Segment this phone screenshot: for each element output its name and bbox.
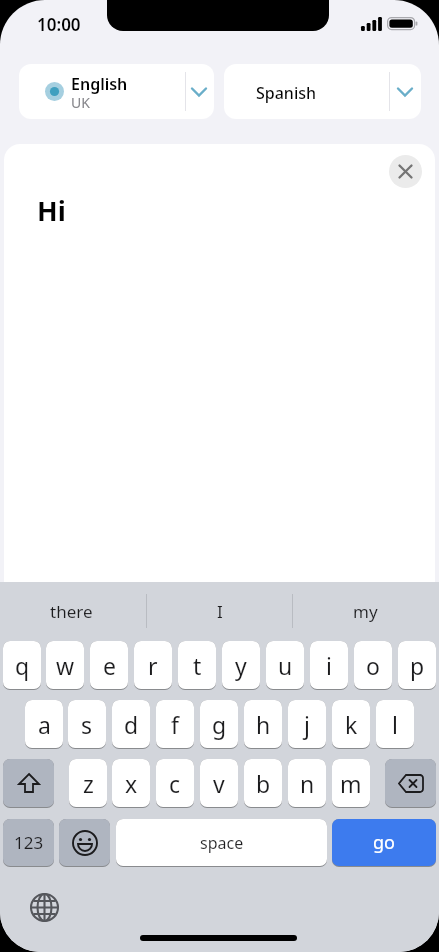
staticText: r — [148, 650, 158, 681]
button[interactable]: y — [222, 641, 260, 689]
button[interactable]: 123 — [3, 819, 54, 866]
staticText: UK — [71, 93, 90, 112]
staticText: m — [340, 768, 362, 799]
button[interactable]: h — [244, 700, 282, 748]
staticText: a — [38, 709, 51, 740]
button[interactable]: go — [332, 819, 436, 866]
button[interactable]: m — [332, 759, 370, 807]
staticText: d — [124, 709, 139, 740]
staticText: p — [410, 650, 425, 681]
button[interactable]: z — [69, 759, 107, 807]
button[interactable]: c — [156, 759, 194, 807]
staticText: k — [345, 709, 358, 740]
button[interactable]: d — [112, 700, 150, 748]
button[interactable]: g — [200, 700, 238, 748]
staticText: o — [366, 650, 380, 681]
button[interactable]: a — [25, 700, 63, 748]
staticText: 10:00 — [37, 13, 81, 36]
staticText: e — [103, 650, 116, 681]
button[interactable]: t — [178, 641, 216, 689]
staticText: q — [15, 650, 30, 681]
staticText: Hi — [37, 192, 66, 229]
button[interactable] — [385, 759, 436, 807]
button[interactable]: i — [310, 641, 348, 689]
staticText: v — [213, 768, 225, 799]
button[interactable]: w — [46, 641, 84, 689]
staticText: t — [193, 650, 202, 681]
staticText: j — [304, 709, 310, 740]
staticText: y — [235, 650, 247, 681]
staticText: go — [373, 830, 395, 855]
button[interactable]: s — [68, 700, 106, 748]
staticText: I — [217, 600, 223, 623]
button[interactable]: q — [3, 641, 41, 689]
button[interactable]: o — [354, 641, 392, 689]
staticText: c — [169, 768, 181, 799]
staticText: Spanish — [256, 82, 317, 104]
staticText: s — [81, 709, 93, 740]
button[interactable]: x — [112, 759, 150, 807]
button[interactable]: Spanish — [224, 64, 421, 119]
staticText: there — [50, 600, 93, 623]
button[interactable] — [389, 155, 422, 188]
button[interactable] — [59, 819, 110, 866]
staticText: f — [171, 709, 179, 740]
button[interactable]: English — [19, 64, 214, 119]
button[interactable] — [30, 893, 59, 922]
staticText: n — [300, 768, 315, 799]
button[interactable]: r — [134, 641, 172, 689]
staticText: 123 — [14, 831, 44, 854]
button[interactable]: u — [266, 641, 304, 689]
button[interactable]: b — [244, 759, 282, 807]
button[interactable]: l — [376, 700, 414, 748]
button[interactable]: f — [156, 700, 194, 748]
button[interactable]: k — [332, 700, 370, 748]
staticText: w — [56, 650, 75, 681]
staticText: English — [71, 73, 128, 95]
button[interactable]: e — [90, 641, 128, 689]
staticText: b — [256, 768, 271, 799]
staticText: space — [200, 832, 244, 854]
button[interactable]: space — [116, 819, 327, 866]
staticText: l — [392, 709, 398, 740]
button[interactable]: j — [288, 700, 326, 748]
staticText: h — [256, 709, 271, 740]
staticText: z — [83, 768, 94, 799]
staticText: i — [326, 650, 332, 681]
staticText: x — [125, 768, 138, 799]
button[interactable]: p — [398, 641, 436, 689]
button[interactable] — [3, 759, 54, 807]
button[interactable]: n — [288, 759, 326, 807]
staticText: g — [212, 709, 227, 740]
staticText: u — [278, 650, 293, 681]
staticText: my — [353, 600, 378, 623]
button[interactable]: v — [200, 759, 238, 807]
